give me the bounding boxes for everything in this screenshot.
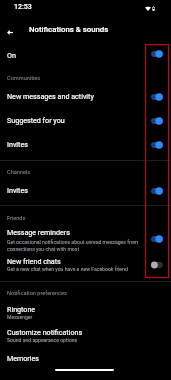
staticText: New messages and activity xyxy=(7,92,94,100)
staticText: Memories xyxy=(7,354,39,362)
button[interactable]: Toggle on xyxy=(146,88,168,106)
button[interactable] xyxy=(0,85,171,108)
button[interactable] xyxy=(0,226,171,254)
staticText: Invites xyxy=(7,140,28,148)
staticText: Invites xyxy=(7,186,28,194)
staticText: Message reminders xyxy=(7,228,70,236)
staticText: connections you chat with most xyxy=(7,246,80,252)
button[interactable] xyxy=(0,302,171,324)
staticText: New friend chats xyxy=(7,257,61,265)
staticText: Get occasional notifications about unrea… xyxy=(7,239,139,245)
button[interactable]: Toggle on xyxy=(146,182,168,200)
button[interactable] xyxy=(0,179,171,202)
button[interactable]: Toggle on xyxy=(146,230,168,248)
staticText: Notifications & sounds xyxy=(29,25,109,34)
button[interactable] xyxy=(0,325,171,346)
staticText: Customize notifications xyxy=(7,328,83,336)
staticText: Messenger xyxy=(7,314,33,320)
staticText: Suggested for you xyxy=(7,116,65,124)
staticText: Get a new chat when you have a new Faceb… xyxy=(7,266,128,272)
button[interactable] xyxy=(0,108,171,132)
button[interactable] xyxy=(0,350,171,368)
staticText: Ringtone xyxy=(7,305,36,313)
button[interactable]: Toggle on xyxy=(146,136,168,154)
staticText: Channels xyxy=(7,169,31,176)
staticText: Communities xyxy=(7,75,41,82)
button[interactable]: Toggle on xyxy=(146,112,168,130)
staticText: 12:53 xyxy=(14,3,32,11)
staticText: Notification preferences xyxy=(7,290,67,297)
button[interactable]: Toggle on xyxy=(146,45,168,63)
button[interactable] xyxy=(0,44,171,66)
button[interactable]: Back xyxy=(1,21,21,41)
staticText: On xyxy=(7,51,16,59)
button[interactable] xyxy=(0,132,171,156)
staticText: Friends xyxy=(7,215,26,222)
button[interactable]: Toggle off xyxy=(146,256,168,274)
staticText: Sound and appearance options xyxy=(7,337,78,343)
button[interactable] xyxy=(0,255,171,277)
